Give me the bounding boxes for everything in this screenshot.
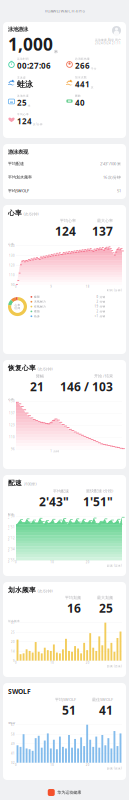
staticText: 120 bbox=[9, 264, 15, 267]
staticText: 次 bbox=[91, 86, 94, 89]
staticText: 区间 bbox=[14, 306, 20, 310]
staticText: 2'43" bbox=[39, 493, 69, 509]
staticText: 124 bbox=[17, 116, 32, 127]
staticText: 14 bbox=[11, 650, 15, 653]
staticText: 146 / 103 bbox=[60, 378, 113, 394]
staticText: 25 bbox=[17, 97, 27, 108]
staticText: 9 bbox=[50, 285, 52, 288]
staticText: 泳池游泳 bbox=[8, 26, 28, 33]
staticText: 平均配速 bbox=[8, 161, 24, 166]
staticText: 10 bbox=[50, 560, 54, 564]
staticText: 主泳姿 bbox=[17, 76, 26, 79]
staticText: 泳池长度 bbox=[17, 94, 29, 97]
staticText: 划水频率 bbox=[8, 586, 36, 594]
staticText: 最大划频 bbox=[97, 595, 113, 600]
staticText: 平均配速 bbox=[53, 489, 69, 493]
staticText: 次/分钟 bbox=[33, 122, 43, 126]
staticText: 20 bbox=[86, 763, 90, 767]
staticText: 燃脂 bbox=[34, 310, 40, 313]
staticText: 124 bbox=[55, 223, 76, 239]
staticText: 游泳表现 bbox=[8, 149, 28, 155]
staticText: 配速 bbox=[8, 513, 14, 516]
staticText: 130 bbox=[9, 254, 15, 257]
staticText: 距离 (百米) bbox=[107, 767, 122, 770]
staticText: 49 bbox=[11, 742, 15, 746]
staticText: 2'43"/100 米 bbox=[100, 161, 121, 166]
staticText: 137 bbox=[9, 411, 15, 415]
staticText: HUAWEI WATCH 4 Pro bbox=[44, 8, 84, 14]
staticText: (次/分钟) bbox=[37, 366, 52, 372]
staticText: (/100米) bbox=[23, 481, 36, 487]
staticText: 运动健康 App 用户 bbox=[95, 38, 121, 41]
staticText: 配速 bbox=[8, 479, 22, 487]
staticText: 2 分钟 bbox=[96, 300, 105, 303]
staticText: 心率 bbox=[14, 303, 20, 307]
staticText: 平均SWOLF bbox=[8, 188, 29, 193]
staticText: 恢复心率 bbox=[8, 364, 36, 372]
staticText: 40 bbox=[75, 97, 85, 108]
staticText: 划水频率 bbox=[8, 619, 20, 623]
staticText: 华为运动健康 bbox=[57, 790, 81, 795]
staticText: 划水次数 bbox=[75, 76, 87, 79]
staticText: 25 bbox=[11, 631, 15, 634]
staticText: 1 分钟 bbox=[50, 449, 59, 453]
staticText: 平均SWOLF bbox=[55, 697, 76, 702]
staticText: 51 bbox=[62, 702, 76, 718]
staticText: (次/分钟) bbox=[37, 588, 52, 594]
staticText: 心率 bbox=[8, 398, 14, 401]
staticText: 米 bbox=[28, 104, 31, 107]
staticText: 热身 bbox=[34, 315, 40, 318]
staticText: 无氧耐力 bbox=[34, 300, 46, 303]
staticText: 31 bbox=[11, 621, 15, 625]
staticText: 千卡 bbox=[91, 67, 97, 70]
staticText: 90 bbox=[11, 283, 15, 287]
staticText: 41 bbox=[11, 752, 15, 755]
staticText: <1 分钟 bbox=[94, 314, 105, 318]
staticText: 123 bbox=[9, 423, 15, 427]
staticText: 58 bbox=[11, 733, 15, 736]
staticText: 67 bbox=[11, 723, 15, 727]
staticText: 2'12" bbox=[8, 536, 15, 544]
staticText: 10 bbox=[50, 763, 54, 767]
staticText: 1'51" bbox=[8, 525, 15, 533]
staticText: 41 bbox=[99, 702, 113, 718]
staticText: 极限 bbox=[34, 295, 40, 299]
staticText: 距离 (百米) bbox=[107, 564, 122, 567]
staticText: 圈数 bbox=[75, 94, 81, 97]
staticText: 1'51" bbox=[83, 493, 113, 509]
staticText: 20 bbox=[86, 560, 90, 564]
staticText: 蛙泳 bbox=[17, 79, 33, 89]
staticText: 51 bbox=[117, 188, 121, 193]
staticText: 米 bbox=[54, 49, 58, 54]
staticText: 时间 (分钟) bbox=[107, 289, 122, 292]
staticText: 平均划水频率 bbox=[8, 175, 32, 180]
staticText: 96 bbox=[11, 447, 15, 451]
staticText: 19 分钟 bbox=[94, 305, 105, 308]
staticText: (次/分钟) bbox=[23, 211, 38, 217]
staticText: SWOLF bbox=[8, 721, 15, 725]
staticText: 0 bbox=[15, 763, 17, 767]
staticText: 平均心率 bbox=[60, 218, 76, 223]
staticText: 最大心率 bbox=[97, 218, 113, 223]
staticText: 总消耗热量 bbox=[75, 57, 90, 60]
staticText: 150 bbox=[9, 399, 15, 403]
staticText: 16 次/分钟 bbox=[103, 175, 121, 180]
staticText: 0 bbox=[15, 285, 17, 288]
staticText: 110 bbox=[9, 273, 15, 277]
staticText: 32 bbox=[11, 761, 15, 765]
staticText: 最佳SWOLF bbox=[92, 697, 113, 702]
staticText: 2 分钟 bbox=[96, 310, 105, 313]
staticText: 9 bbox=[13, 659, 15, 663]
staticText: 2'55" bbox=[8, 558, 15, 566]
staticText: 1,000 bbox=[8, 33, 53, 56]
staticText: 16 bbox=[67, 600, 81, 616]
staticText: 0 bbox=[15, 560, 17, 564]
staticText: 20 bbox=[11, 640, 15, 644]
staticText: 1'30" bbox=[8, 514, 15, 522]
staticText: 266 bbox=[75, 60, 90, 71]
staticText: 0 分钟 bbox=[96, 295, 105, 299]
staticText: 平均划频 bbox=[65, 595, 81, 600]
staticText: 21 bbox=[30, 378, 44, 394]
staticText: 心率 bbox=[8, 209, 22, 217]
staticText: 441 bbox=[75, 79, 90, 90]
